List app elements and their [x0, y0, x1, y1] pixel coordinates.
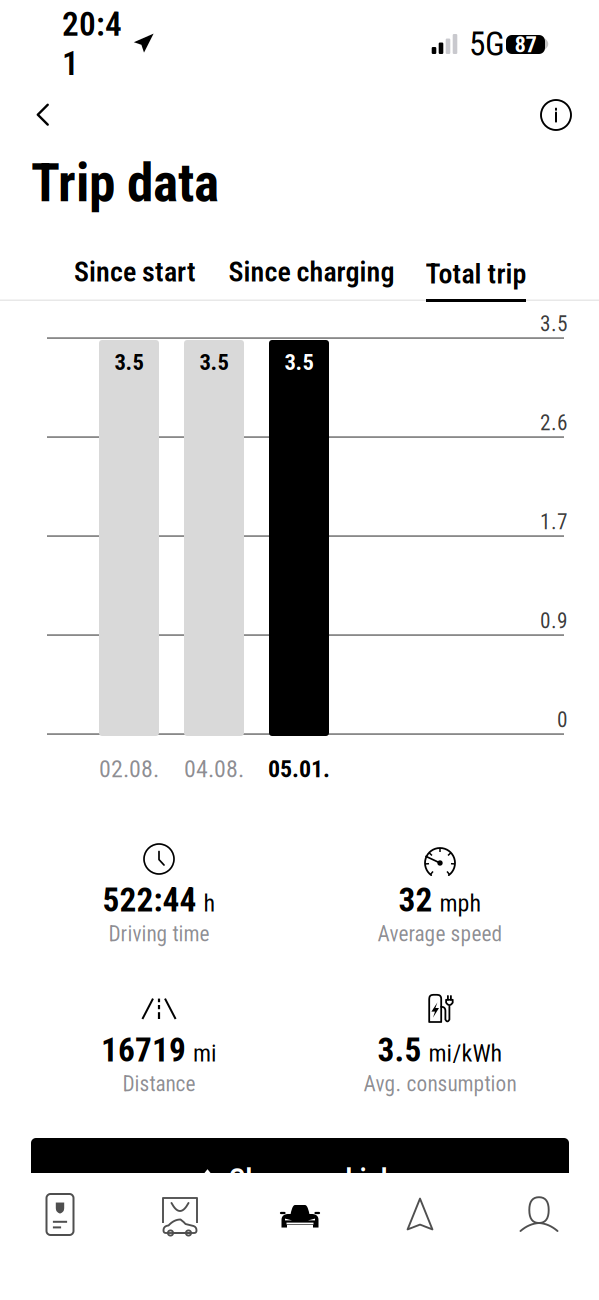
button[interactable]: Total trip [410, 244, 542, 302]
staticText: 3.5 [377, 1030, 421, 1070]
staticText: mi/kWh [428, 1039, 502, 1067]
staticText: 3.5 [540, 311, 568, 336]
staticText: Trip data [31, 152, 219, 214]
staticText: 1.7 [540, 509, 568, 534]
staticText: 522:44 [102, 880, 196, 920]
staticText: 3.5 [114, 349, 143, 376]
staticText: 05.01. [268, 755, 330, 783]
staticText: mi [193, 1039, 217, 1067]
staticText: Avg. consumption [363, 1071, 516, 1096]
staticText: Total trip [425, 258, 526, 290]
button[interactable]: Information [528, 87, 584, 143]
staticText: mph [439, 889, 481, 917]
staticText: h [203, 889, 215, 917]
staticText: 3.5 [284, 349, 313, 376]
staticText: Since charging [228, 256, 394, 288]
button[interactable]: Documents [0, 1174, 120, 1274]
button[interactable]: Back [18, 92, 68, 138]
staticText: 0 [557, 707, 568, 732]
staticText: 87 [514, 31, 536, 58]
button[interactable]: Since charging [215, 244, 408, 300]
staticText: 20:41 [62, 5, 122, 83]
button[interactable]: My vehicle [240, 1174, 360, 1274]
staticText: Driving time [108, 921, 209, 946]
button[interactable]: Navigation [360, 1174, 480, 1274]
staticText: Charge vehicle [228, 1162, 401, 1196]
staticText: 04.08. [184, 755, 244, 783]
staticText: Distance [122, 1071, 195, 1096]
staticText: 3.5 [199, 349, 228, 376]
button[interactable]: Profile [479, 1174, 599, 1274]
button[interactable]: Charge vehicle [31, 1138, 569, 1173]
staticText: 5G [469, 24, 505, 64]
button[interactable]: Since start [40, 244, 230, 300]
staticText: 0.9 [540, 608, 568, 633]
staticText: Average speed [377, 921, 502, 946]
staticText: 16719 [101, 1030, 186, 1070]
staticText: 2.6 [540, 410, 568, 435]
staticText: 02.08. [99, 755, 159, 783]
staticText: Since start [74, 256, 196, 288]
button[interactable]: Shop [120, 1174, 240, 1274]
staticText: 32 [398, 880, 432, 920]
